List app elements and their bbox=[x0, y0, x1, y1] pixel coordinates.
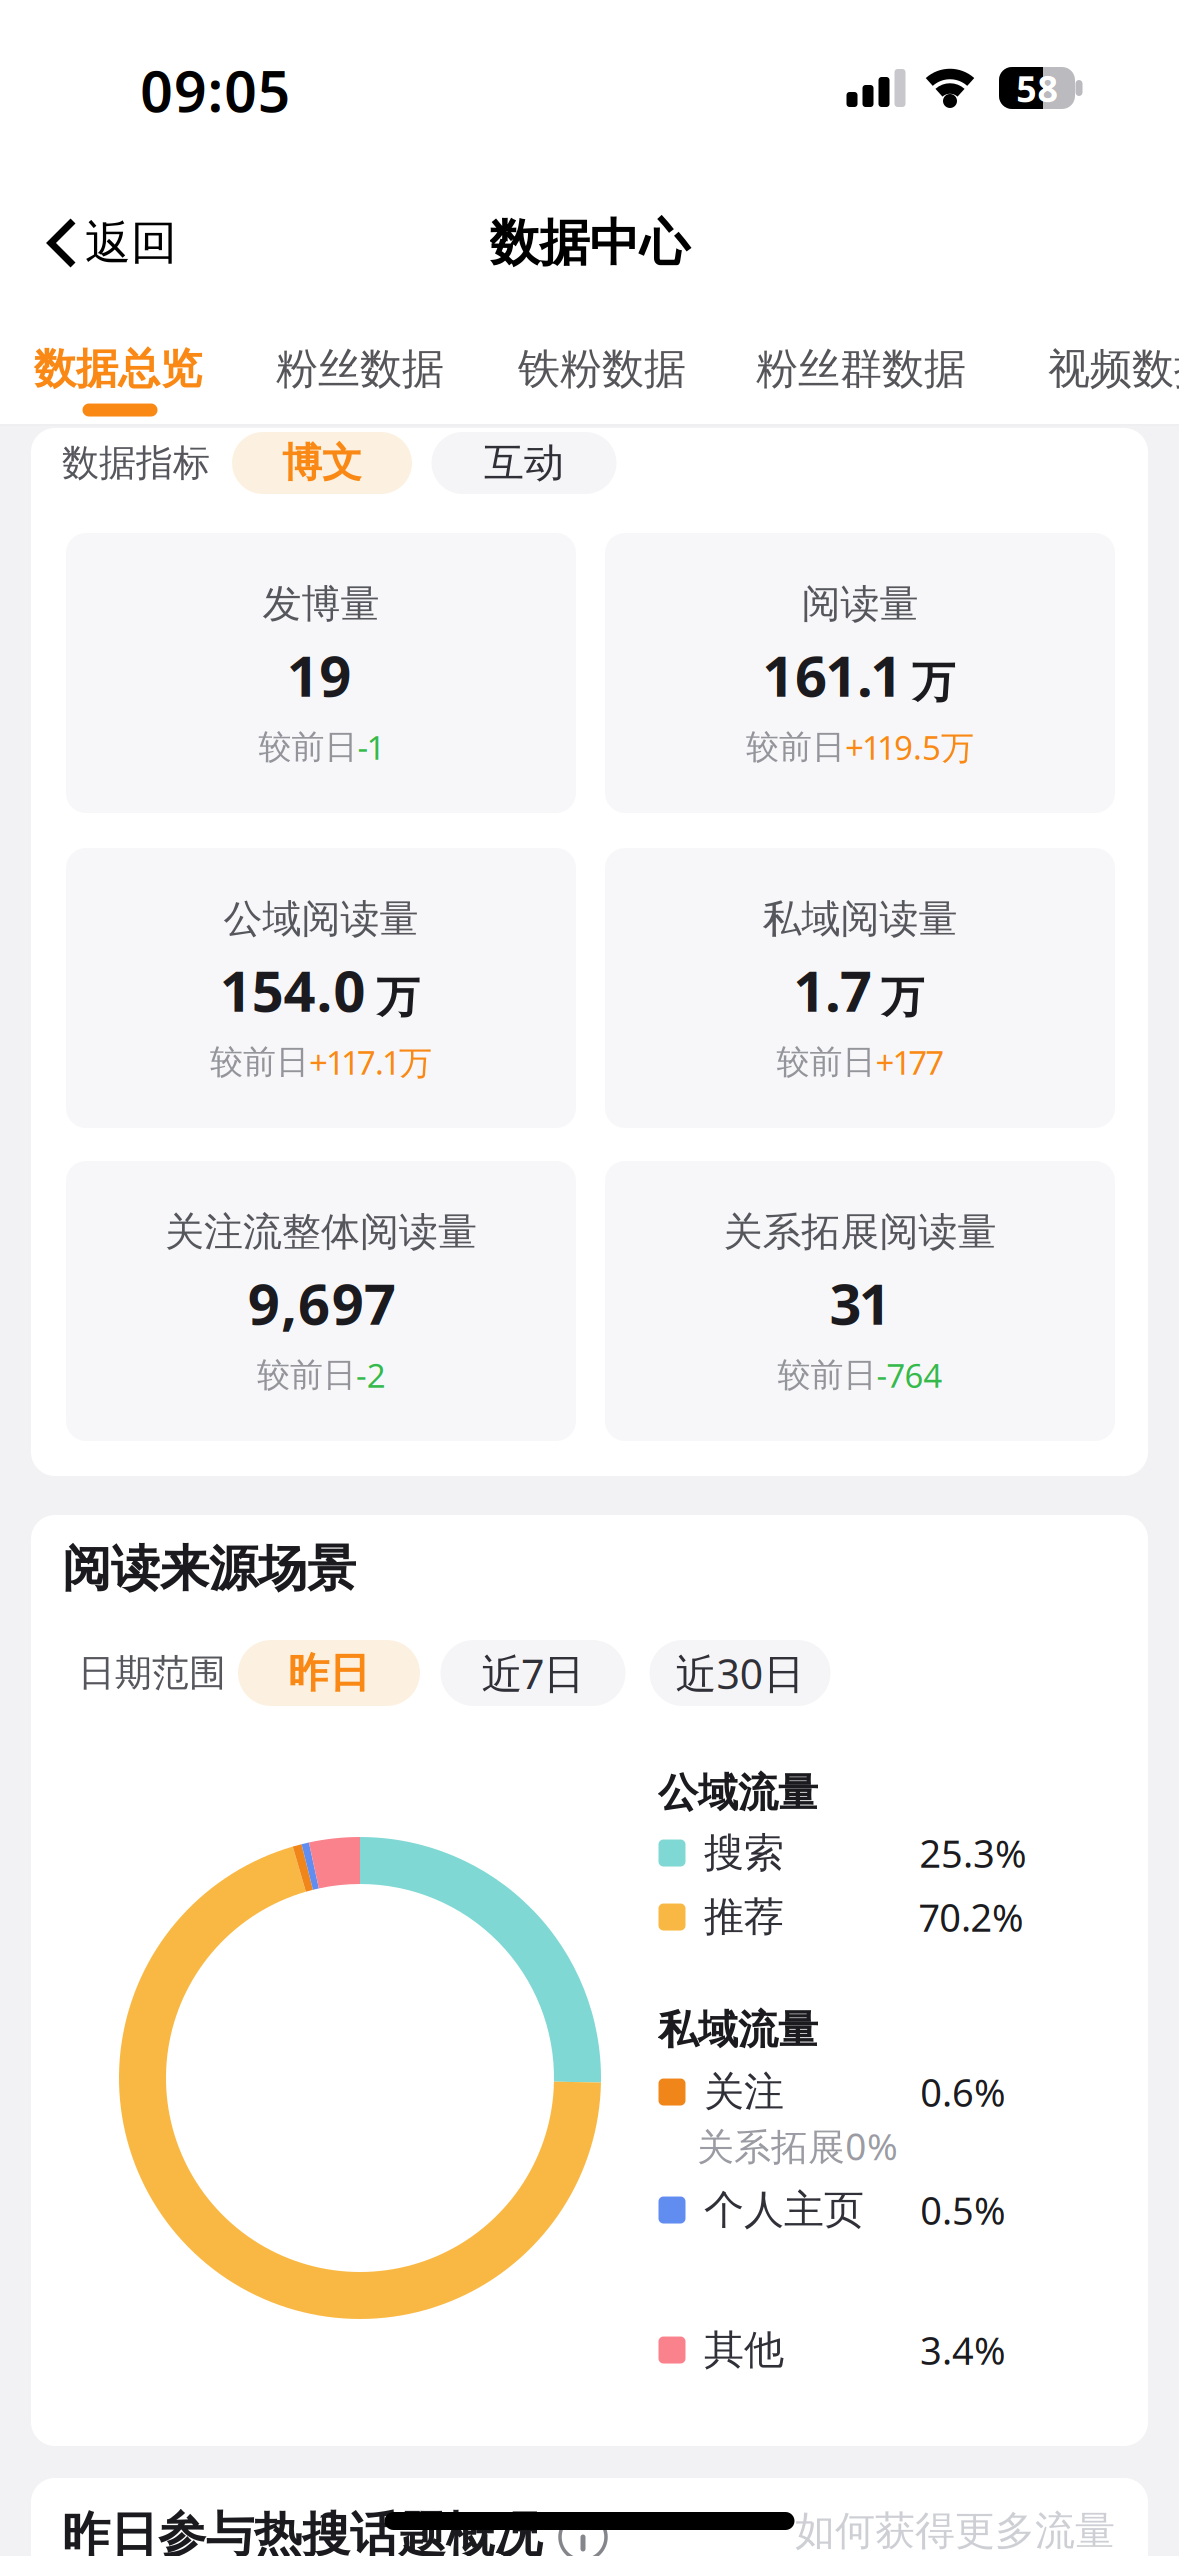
staticText: 公域阅读量 bbox=[223, 894, 418, 943]
staticText: 1.7 bbox=[796, 952, 871, 1028]
staticText: 如何获得更多流量 bbox=[795, 2506, 1115, 2556]
staticText: -2 bbox=[356, 1352, 385, 1397]
staticText: 其他 bbox=[704, 2325, 784, 2375]
staticText: 近7日 bbox=[481, 1645, 584, 1701]
button[interactable]: 返回 bbox=[7, 208, 177, 278]
staticText: -764 bbox=[876, 1352, 942, 1397]
button[interactable]: 近7日 bbox=[440, 1640, 625, 1706]
staticText: 日期范围 bbox=[78, 1650, 226, 1696]
staticText: 较前日 bbox=[210, 1041, 309, 1083]
button[interactable]: 昨日 bbox=[238, 1640, 420, 1706]
staticText: 铁粉数据 bbox=[518, 342, 686, 395]
staticText: 9,697 bbox=[247, 1265, 395, 1341]
button[interactable]: 近30日 bbox=[649, 1640, 830, 1706]
staticText: 万 bbox=[881, 970, 924, 1024]
staticText: 19 bbox=[289, 637, 352, 713]
staticText: 09:05 bbox=[139, 51, 290, 129]
staticText: 粉丝数据 bbox=[276, 342, 444, 395]
staticText: +177 bbox=[875, 1039, 943, 1084]
staticText: 视频数据 bbox=[1048, 342, 1179, 395]
staticText: 数据总览 bbox=[34, 342, 202, 395]
staticText: 推荐 bbox=[704, 1892, 784, 1942]
staticText: 搜索 bbox=[704, 1828, 784, 1878]
staticText: 较前日 bbox=[258, 726, 357, 768]
staticText: 161.1 bbox=[765, 637, 902, 713]
staticText: 万 bbox=[376, 970, 419, 1024]
staticText: 近30日 bbox=[675, 1645, 804, 1701]
staticText: -1 bbox=[357, 724, 383, 769]
staticText: +119.5万 bbox=[845, 724, 974, 769]
staticText: 较前日 bbox=[776, 1041, 875, 1083]
staticText: 关注流整体阅读量 bbox=[165, 1207, 477, 1256]
staticText: 关系拓展阅读量 bbox=[723, 1207, 996, 1256]
staticText: 粉丝群数据 bbox=[756, 342, 966, 395]
staticText: 70.2% bbox=[920, 1891, 1024, 1943]
button[interactable]: 互动 bbox=[431, 432, 616, 494]
staticText: 私域流量 bbox=[658, 2005, 818, 2055]
staticText: 万 bbox=[912, 655, 955, 709]
staticText: 阅读量 bbox=[801, 579, 918, 628]
staticText: 31 bbox=[829, 1265, 890, 1341]
staticText: 25.3% bbox=[920, 1827, 1027, 1879]
staticText: 154.0 bbox=[222, 952, 366, 1028]
staticText: 返回 bbox=[85, 214, 177, 272]
staticText: 3.4% bbox=[920, 2324, 1006, 2376]
staticText: 较前日 bbox=[746, 726, 845, 768]
staticText: 个人主页 bbox=[704, 2185, 864, 2235]
button[interactable]: 粉丝群数据 bbox=[756, 342, 966, 395]
staticText: 公域流量 bbox=[658, 1768, 818, 1818]
staticText: 关系拓展0% bbox=[697, 2121, 898, 2171]
staticText: 较前日 bbox=[777, 1354, 876, 1396]
staticText: 较前日 bbox=[257, 1354, 356, 1396]
staticText: 0.6% bbox=[920, 2066, 1006, 2118]
button[interactable]: 铁粉数据 bbox=[518, 342, 686, 395]
staticText: 昨日参与热搜话题概况 bbox=[62, 2505, 542, 2556]
staticText: +117.1万 bbox=[309, 1039, 432, 1084]
staticText: 数据指标 bbox=[62, 440, 210, 486]
button[interactable]: 信息 bbox=[560, 2514, 606, 2556]
button[interactable]: 粉丝数据 bbox=[276, 342, 444, 395]
staticText: 私域阅读量 bbox=[762, 894, 957, 943]
staticText: 关注 bbox=[704, 2067, 784, 2117]
staticText: 58 bbox=[1016, 63, 1058, 112]
button[interactable]: 视频数据 bbox=[1048, 342, 1179, 395]
staticText: 阅读来源场景 bbox=[62, 1538, 356, 1600]
staticText: 数据中心 bbox=[489, 211, 689, 274]
button[interactable]: 博文 bbox=[232, 432, 412, 494]
staticText: 0.5% bbox=[920, 2184, 1006, 2236]
button[interactable]: 数据总览 bbox=[34, 342, 202, 395]
staticText: 博文 bbox=[282, 438, 362, 488]
staticText: 发博量 bbox=[262, 579, 379, 628]
staticText: 互动 bbox=[484, 438, 564, 488]
staticText: 昨日 bbox=[288, 1647, 370, 1699]
